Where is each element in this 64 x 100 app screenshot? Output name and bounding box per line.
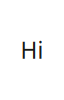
- staticText: Hi: [20, 35, 43, 65]
